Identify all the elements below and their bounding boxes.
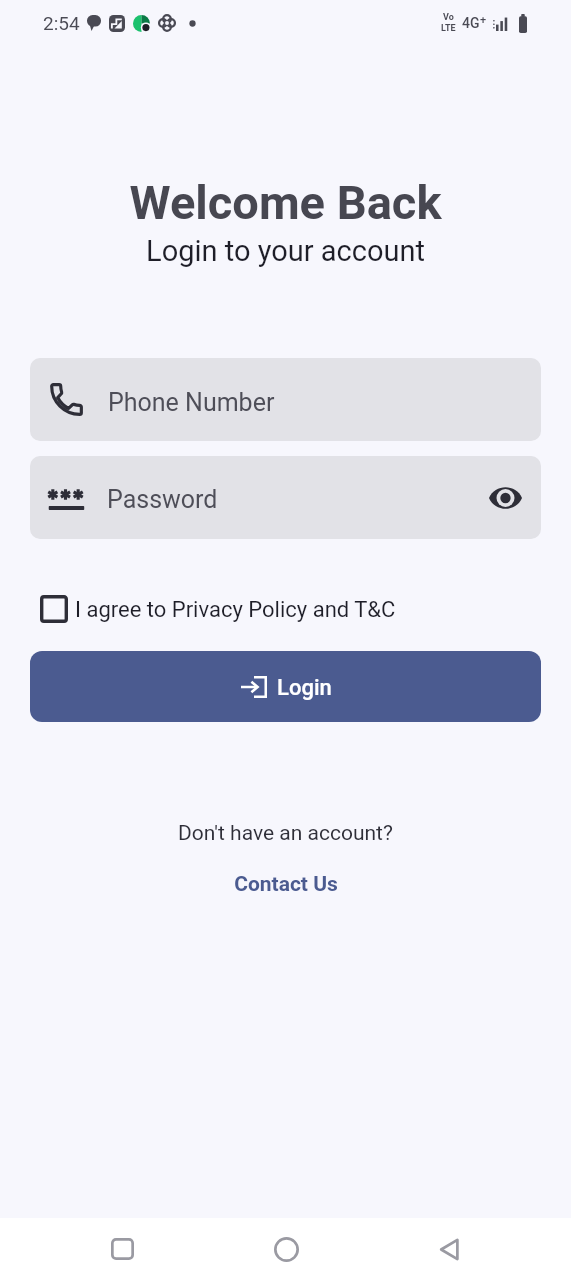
button[interactable]: Contact Us xyxy=(234,872,338,897)
staticText: + xyxy=(480,14,487,27)
button[interactable]: Recent apps xyxy=(90,1218,154,1280)
staticText: Password xyxy=(107,485,218,514)
button[interactable]: Back xyxy=(417,1218,481,1280)
staticText: Don't have an account? xyxy=(0,821,571,846)
button[interactable]: Password xyxy=(30,456,541,539)
button[interactable]: Show password xyxy=(483,476,527,520)
button[interactable]: Phone Number xyxy=(30,358,541,441)
button[interactable]: I agree to Privacy Policy and T&C xyxy=(40,592,396,626)
staticText: I agree to Privacy Policy and T&C xyxy=(75,597,396,623)
staticText: Login xyxy=(277,675,332,701)
staticText: Vo xyxy=(443,12,454,23)
staticText: 4G xyxy=(462,15,480,31)
staticText: LTE xyxy=(441,23,456,34)
staticText: Welcome Back xyxy=(0,175,571,230)
staticText: Phone Number xyxy=(108,388,275,417)
staticText: Login to your account xyxy=(0,234,571,268)
button[interactable]: Home xyxy=(254,1218,318,1280)
staticText: 2:54 xyxy=(43,12,80,34)
button[interactable]: Login xyxy=(30,651,541,722)
